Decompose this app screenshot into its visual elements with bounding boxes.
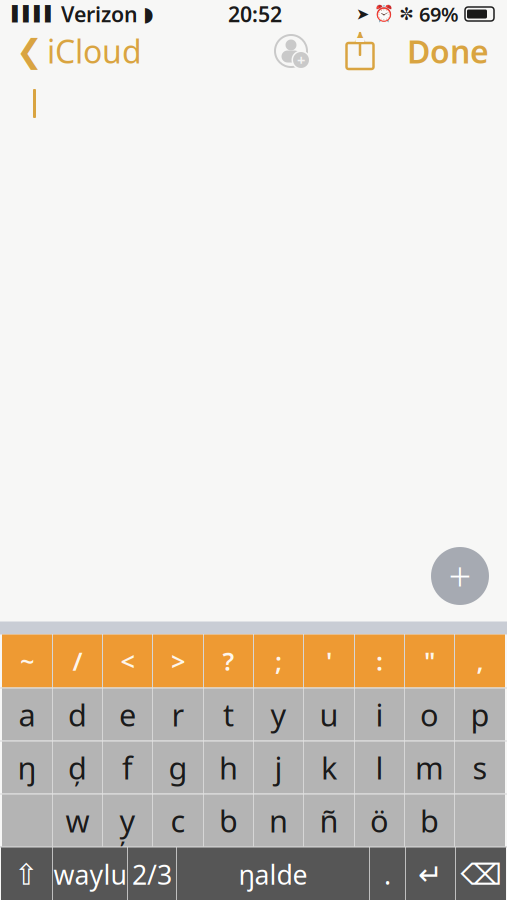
button[interactable]: d [53,688,102,740]
staticText: h [219,747,238,788]
staticText: y [270,694,286,735]
staticText: / [72,644,82,678]
staticText: l [375,747,383,788]
button[interactable]: e [103,688,152,740]
staticText: " [424,644,435,678]
staticText: ◗ [143,3,154,25]
button[interactable]: o [405,688,454,740]
button[interactable]: 2/3 [128,847,176,900]
button[interactable]: u [304,688,354,740]
staticText: Done [407,30,489,72]
button[interactable]: j [254,741,303,793]
staticText: ' [326,644,332,678]
staticText: c [170,800,185,841]
button[interactable]: b [405,794,454,846]
button[interactable]: " [405,634,454,687]
button[interactable]: ' [304,634,354,687]
button[interactable]: Share [313,29,377,73]
staticText: . [384,857,391,892]
staticText: ŋalde [238,857,307,892]
staticText: 69% [419,1,459,27]
button[interactable]: p [455,688,505,740]
button[interactable]: c [153,794,203,846]
button[interactable]: , [455,634,505,687]
staticText: 2/3 [132,857,172,892]
staticText: j [274,747,282,788]
staticText: ? [222,644,234,678]
staticText: n [269,800,288,841]
staticText: > [171,644,185,678]
staticText: + [448,549,471,602]
staticText: d [68,694,87,735]
button[interactable]: > [153,634,203,687]
staticText: ⏰ [374,5,394,23]
staticText: Verizon [61,0,138,28]
staticText: < [120,644,134,678]
staticText: m [415,747,444,788]
button[interactable]: Shift [1,847,52,900]
staticText: ⇧ [14,858,39,891]
button[interactable]: d̦ [53,741,102,793]
staticText: ❮ [16,33,43,69]
button[interactable]: g [153,741,203,793]
button[interactable]: y̦ [103,794,152,846]
staticText: waylu [53,857,126,892]
button[interactable]: ; [254,634,303,687]
button[interactable]: m [405,741,454,793]
staticText: 20:52 [228,0,282,28]
button[interactable]: : [355,634,404,687]
button[interactable]: ŋ [2,741,52,793]
button[interactable]: f [103,741,152,793]
staticText: ~ [20,644,34,678]
staticText: iCloud [47,30,142,72]
button[interactable]: h [204,741,253,793]
button[interactable]: y [254,688,303,740]
button[interactable]: < [103,634,152,687]
button[interactable]: waylu [53,847,127,900]
button[interactable]: Space [177,847,369,900]
staticText: p [470,694,489,735]
button[interactable]: / [53,634,102,687]
button[interactable]: Delete [456,847,506,900]
button[interactable]: Return [406,847,455,900]
button[interactable]: ❮ [0,24,142,78]
button[interactable]: ~ [2,634,52,687]
button[interactable]: s [455,741,505,793]
staticText: ↵ [418,858,443,891]
staticText: f [122,747,133,788]
staticText: t [223,694,234,735]
staticText: e [119,694,136,735]
staticText: s [472,747,487,788]
button[interactable]: ñ [304,794,354,846]
staticText: y̦ [119,800,135,841]
button[interactable]: w [53,794,102,846]
staticText: ⌫ [460,858,501,891]
button[interactable]: ? [204,634,253,687]
button[interactable]: Add attachment [429,545,491,607]
button[interactable]: Done [377,24,507,78]
button[interactable]: ƅ [204,794,253,846]
staticText: : [376,644,383,678]
button[interactable]: t [204,688,253,740]
button[interactable]: Add People [269,31,313,71]
staticText: , [476,644,483,678]
staticText: r [171,694,184,735]
staticText: b [420,800,439,841]
staticText: ➤ [356,5,369,23]
staticText: ▲ [354,28,365,44]
button[interactable]: ö [355,794,404,846]
staticText: ƅ [219,800,238,841]
button[interactable]: n [254,794,303,846]
button[interactable]: i [355,688,404,740]
button[interactable]: k [304,741,354,793]
staticText: o [420,694,439,735]
staticText: ✼ [399,4,414,24]
staticText: ▌▌▌▌ [12,6,56,22]
button[interactable]: r [153,688,203,740]
button[interactable]: . [370,847,405,900]
staticText: d̦ [68,747,87,788]
staticText: ŋ [17,747,36,788]
button[interactable]: l [355,741,404,793]
staticText: ñ [319,800,338,841]
button[interactable]: a [2,688,52,740]
